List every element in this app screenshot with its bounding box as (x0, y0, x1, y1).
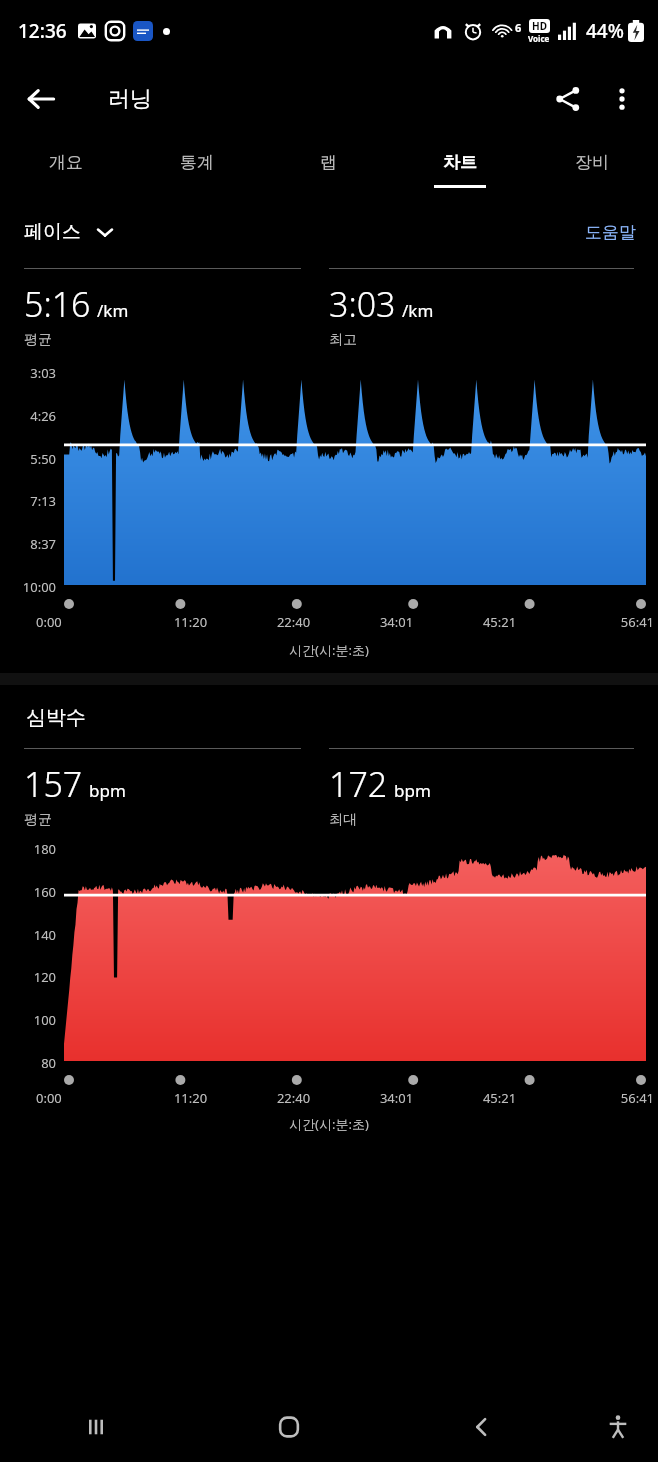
button[interactable]: 개요 (0, 136, 131, 198)
staticText: 도움말 (585, 222, 636, 243)
button[interactable]: Back (12, 70, 70, 128)
button[interactable]: Home (192, 1392, 385, 1462)
staticText: 통계 (180, 152, 214, 173)
button[interactable]: More options (596, 73, 648, 125)
staticText: 장비 (575, 152, 609, 173)
staticText: 평균 (24, 811, 52, 829)
staticText: 5:16 (24, 281, 91, 327)
staticText: 45:21 (448, 613, 551, 631)
button[interactable]: 페이스 (24, 220, 115, 244)
button[interactable]: Accessibility (578, 1392, 658, 1462)
staticText: /km (402, 299, 434, 322)
staticText: 22:40 (242, 613, 345, 631)
button[interactable]: 랩 (262, 136, 394, 198)
staticText: 172 (329, 761, 388, 807)
staticText: bpm (394, 779, 431, 802)
staticText: 22:40 (242, 1089, 345, 1107)
staticText: 157 (24, 761, 83, 807)
staticText: 랩 (320, 152, 337, 173)
staticText: 최대 (329, 811, 357, 829)
staticText: 시간(시:분:초) (0, 1115, 658, 1133)
staticText: 0:00 (36, 613, 139, 631)
staticText: 3:03 (329, 281, 396, 327)
staticText: 페이스 (24, 220, 81, 244)
staticText: 44% (586, 18, 624, 44)
button[interactable]: Share (540, 71, 596, 127)
staticText: bpm (89, 779, 126, 802)
staticText: 34:01 (345, 1089, 448, 1107)
staticText: 180 (0, 840, 56, 858)
button[interactable]: 차트 (394, 136, 526, 198)
staticText: 56:41 (551, 1089, 654, 1107)
button[interactable]: Back (385, 1392, 578, 1462)
staticText: 개요 (49, 152, 83, 173)
staticText: 5:50 (0, 450, 56, 468)
staticText: 11:20 (139, 1089, 242, 1107)
staticText: 3:03 (0, 364, 56, 382)
staticText: 시간(시:분:초) (0, 641, 658, 659)
staticText: 차트 (443, 152, 477, 173)
staticText: 11:20 (139, 613, 242, 631)
staticText: 6 (515, 20, 522, 35)
staticText: 7:13 (0, 492, 56, 510)
staticText: 120 (0, 968, 56, 986)
staticText: 34:01 (345, 613, 448, 631)
staticText: Voice (528, 33, 550, 44)
staticText: 심박수 (26, 705, 86, 730)
staticText: 0:00 (36, 1089, 139, 1107)
staticText: 8:37 (0, 535, 56, 553)
staticText: /km (97, 299, 129, 322)
staticText: 4:26 (0, 407, 56, 425)
staticText: 45:21 (448, 1089, 551, 1107)
button[interactable]: Recents (0, 1392, 192, 1462)
staticText: 56:41 (551, 613, 654, 631)
staticText: 12:36 (18, 18, 67, 44)
staticText: 140 (0, 926, 56, 944)
button[interactable]: 통계 (131, 136, 262, 198)
button[interactable]: 장비 (526, 136, 658, 198)
staticText: 10:00 (0, 578, 56, 596)
staticText: 평균 (24, 331, 52, 349)
staticText: 100 (0, 1011, 56, 1029)
staticText: 러닝 (108, 85, 152, 113)
staticText: HD (532, 19, 547, 33)
staticText: 최고 (329, 331, 357, 349)
staticText: 80 (0, 1054, 56, 1072)
button[interactable]: 도움말 (585, 222, 636, 243)
staticText: 160 (0, 883, 56, 901)
